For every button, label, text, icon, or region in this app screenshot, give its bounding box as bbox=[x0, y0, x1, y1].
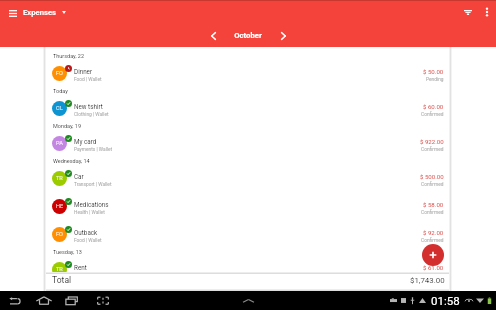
staticText: Medications bbox=[74, 201, 109, 208]
staticText: October bbox=[234, 31, 262, 40]
staticText: HE bbox=[56, 203, 64, 210]
staticText: FO bbox=[56, 231, 63, 238]
button[interactable]: Screenshot bbox=[94, 293, 112, 308]
staticText: $ 50.00 bbox=[423, 68, 444, 75]
button[interactable]: Expenses bbox=[23, 2, 66, 22]
staticText: Confirmed bbox=[421, 210, 444, 216]
staticText: Confirmed bbox=[421, 182, 444, 188]
button[interactable]: More options bbox=[476, 0, 496, 24]
button[interactable]: Filter bbox=[456, 0, 480, 24]
staticText: $ 61.00 bbox=[423, 264, 444, 271]
button[interactable]: TR bbox=[45, 255, 451, 272]
staticText: TR bbox=[56, 175, 63, 182]
staticText: $1,743.00 bbox=[410, 276, 445, 285]
staticText: Clothing | Wallet bbox=[74, 112, 109, 118]
staticText: Payments | Wallet bbox=[74, 147, 113, 153]
staticText: CL bbox=[56, 105, 63, 112]
staticText: Transport | Wallet bbox=[74, 182, 112, 188]
button[interactable]: Expand status bar bbox=[239, 292, 257, 310]
staticText: FO bbox=[56, 70, 63, 77]
staticText: Pending bbox=[426, 77, 444, 83]
staticText: Today bbox=[53, 88, 68, 94]
button[interactable]: Previous month bbox=[201, 25, 225, 46]
staticText: TR bbox=[56, 266, 63, 272]
staticText: Food | Wallet bbox=[74, 77, 102, 83]
button[interactable]: FO bbox=[45, 59, 451, 87]
button[interactable]: Open navigation menu bbox=[4, 5, 21, 22]
button[interactable]: HE bbox=[45, 192, 451, 220]
staticText: Monday, 19 bbox=[53, 123, 81, 129]
staticText: Total bbox=[52, 275, 72, 285]
staticText: Expenses bbox=[23, 8, 56, 17]
staticText: Outback bbox=[74, 229, 98, 236]
staticText: $ 500.00 bbox=[420, 173, 444, 180]
staticText: PA bbox=[56, 140, 63, 147]
staticText: My card bbox=[74, 138, 97, 145]
staticText: Health | Wallet bbox=[74, 210, 105, 216]
button[interactable]: FO bbox=[45, 220, 451, 248]
staticText: Rent bbox=[74, 264, 87, 271]
staticText: New tshirt bbox=[74, 103, 103, 110]
button[interactable]: October bbox=[225, 25, 271, 46]
button[interactable]: Next month bbox=[271, 25, 295, 46]
staticText: Confirmed bbox=[421, 112, 444, 118]
staticText: Car bbox=[74, 173, 84, 180]
staticText: $ 922.00 bbox=[420, 138, 444, 145]
button[interactable]: Add expense bbox=[422, 244, 444, 266]
staticText: Confirmed bbox=[421, 147, 444, 153]
staticText: $ 58.00 bbox=[423, 201, 444, 208]
staticText: Confirmed bbox=[421, 238, 444, 244]
button[interactable]: PA bbox=[45, 129, 451, 157]
staticText: $ 60.00 bbox=[423, 103, 444, 110]
button[interactable]: TR bbox=[45, 164, 451, 192]
button[interactable]: Home bbox=[34, 293, 54, 308]
staticText: Wednesday, 14 bbox=[53, 158, 90, 164]
staticText: Dinner bbox=[74, 68, 93, 75]
staticText: Food | Wallet bbox=[74, 238, 102, 244]
button[interactable]: Back bbox=[7, 295, 23, 307]
button[interactable]: CL bbox=[45, 94, 451, 122]
staticText: Tuesday, 13 bbox=[53, 249, 82, 255]
staticText: Thursday, 22 bbox=[53, 53, 85, 59]
button[interactable]: Recent apps bbox=[63, 293, 82, 308]
staticText: $ 92.00 bbox=[423, 229, 444, 236]
staticText: 01:58 bbox=[431, 294, 460, 307]
